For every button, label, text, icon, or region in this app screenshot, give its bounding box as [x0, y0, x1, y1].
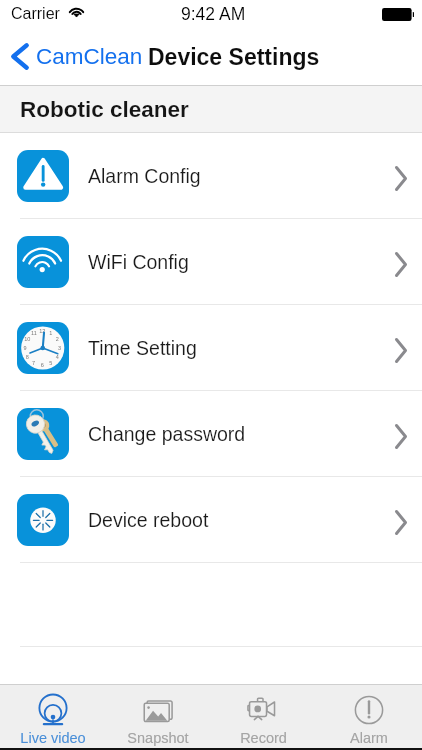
staticText: Device Settings — [148, 44, 320, 70]
button[interactable]: Alarm Config — [0, 133, 422, 219]
staticText: Device reboot — [88, 509, 209, 531]
staticText: Record — [240, 730, 287, 746]
button[interactable]: Snapshot — [105, 688, 210, 746]
staticText: Snapshot — [127, 730, 189, 746]
button[interactable]: Alarm — [316, 688, 422, 746]
button[interactable]: WiFi Config — [0, 219, 422, 305]
staticText: Carrier — [11, 5, 60, 23]
button[interactable]: Record — [210, 688, 316, 746]
button[interactable]: Time Setting — [0, 305, 422, 391]
staticText: Change password — [88, 423, 246, 445]
button[interactable]: Device reboot — [0, 477, 422, 563]
staticText: Time Setting — [88, 337, 197, 359]
button[interactable]: Live video — [0, 688, 105, 746]
button[interactable]: CamClean — [0, 42, 151, 77]
staticText: WiFi Config — [88, 251, 189, 273]
staticText: Robotic cleaner — [20, 97, 189, 122]
staticText: 9:42 AM — [181, 4, 246, 24]
staticText: Live video — [20, 730, 86, 746]
button[interactable]: Change password — [0, 391, 422, 477]
staticText: Alarm Config — [88, 165, 201, 187]
staticText: CamClean — [36, 44, 143, 69]
staticText: Alarm — [350, 730, 388, 746]
